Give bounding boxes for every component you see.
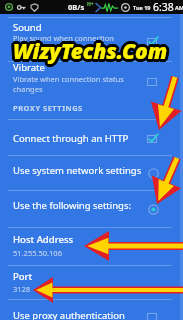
staticText: WizyTechs.Com (12, 34, 167, 63)
staticText: WizyTechs.Com (15, 35, 170, 64)
staticText: 6:38 (153, 0, 174, 14)
staticText: Sound (13, 21, 42, 34)
staticText: WizyTechs.Com (13, 39, 168, 68)
staticText: WizyTechs.Com (11, 37, 166, 66)
staticText: WizyTechs.Com (16, 36, 171, 65)
staticText: WizyTechs.Com (10, 37, 165, 66)
staticText: Host Address (13, 233, 74, 246)
staticText: WizyTechs.Com (13, 34, 168, 63)
staticText: WizyTechs.Com (15, 39, 170, 68)
staticText: WizyTechs.Com (14, 38, 169, 67)
staticText: WizyTechs.Com (14, 40, 169, 69)
staticText: WizyTechs.Com (14, 35, 169, 64)
button[interactable] (0, 228, 183, 265)
button[interactable] (0, 300, 183, 320)
staticText: Port (13, 270, 33, 283)
button[interactable]: Checked (147, 134, 158, 145)
staticText: WizyTechs.Com (11, 39, 166, 68)
staticText: WizyTechs.Com (12, 36, 167, 65)
staticText: WizyTechs.Com (10, 38, 165, 67)
staticText: WizyTechs.Com (15, 37, 170, 66)
button[interactable]: Unchecked (147, 77, 158, 88)
staticText: 0B/s (68, 2, 85, 12)
staticText: WizyTechs.Com (16, 38, 171, 67)
staticText: WizyTechs.Com (14, 34, 169, 63)
button[interactable]: Unchecked (147, 312, 158, 320)
staticText: Use system network settings (13, 164, 142, 177)
staticText: AM (175, 4, 179, 11)
staticText: WizyTechs.Com (11, 36, 166, 65)
button[interactable] (0, 18, 183, 61)
staticText: WizyTechs.Com (14, 39, 169, 68)
button[interactable] (0, 266, 183, 299)
staticText: WizyTechs.Com (13, 40, 168, 69)
button[interactable]: Not selected (148, 168, 159, 179)
button[interactable] (0, 120, 183, 155)
staticText: WizyTechs.Com (13, 37, 168, 66)
staticText: WizyTechs.Com (12, 35, 167, 64)
button[interactable] (0, 191, 183, 227)
staticText: Tue 19 (133, 4, 151, 11)
staticText: Play sound when connection status change… (13, 33, 125, 53)
staticText: WizyTechs.Com (13, 35, 168, 64)
staticText: 3128 (13, 284, 143, 294)
staticText: WizyTechs.Com (15, 38, 170, 67)
staticText: WizyTechs.Com (10, 36, 165, 65)
staticText: Vibrate (13, 61, 45, 74)
staticText: Use the following settings: (13, 199, 132, 212)
staticText: Use proxy authentication (13, 309, 125, 320)
staticText: WizyTechs.Com (12, 39, 167, 68)
staticText: WizyTechs.Com (12, 40, 167, 69)
staticText: WizyTechs.Com (16, 37, 171, 66)
button[interactable]: Selected (148, 204, 159, 215)
staticText: WizyTechs.Com (12, 38, 167, 67)
staticText: Connect through an HTTP (13, 132, 129, 145)
staticText: WizyTechs.Com (15, 36, 170, 65)
staticText: WizyTechs.Com (13, 36, 168, 65)
staticText: WizyTechs.Com (12, 37, 167, 66)
button[interactable]: Checked (147, 37, 158, 48)
staticText: PROXY SETTINGS (13, 103, 83, 113)
staticText: Vibrate when connection status changes (13, 74, 125, 94)
button[interactable] (0, 62, 183, 119)
staticText: 51.255.50.106 (13, 248, 143, 258)
staticText: H+ (87, 1, 94, 8)
staticText: WizyTechs.Com (14, 37, 169, 66)
button[interactable] (0, 156, 183, 190)
staticText: WizyTechs.Com (11, 35, 166, 64)
staticText: WizyTechs.Com (14, 36, 169, 65)
staticText: WizyTechs.Com (13, 38, 168, 67)
staticText: WizyTechs.Com (11, 38, 166, 67)
